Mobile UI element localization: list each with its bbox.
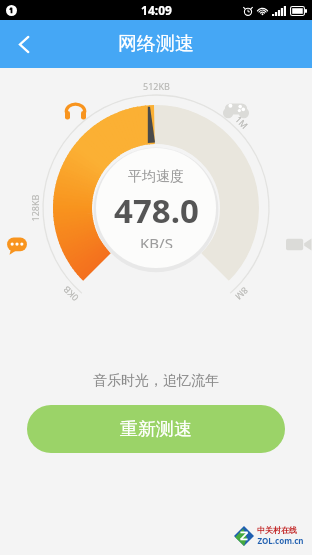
staticText: 1M bbox=[233, 113, 251, 131]
staticText: 0KB bbox=[60, 284, 81, 304]
staticText: ZOL.com.cn bbox=[257, 535, 304, 546]
staticText: 网络测速 bbox=[118, 32, 194, 56]
staticText: 平均速度 bbox=[128, 168, 184, 186]
staticText: 478.0 bbox=[114, 188, 199, 233]
staticText: 512KB bbox=[143, 80, 170, 92]
button[interactable]: Music bbox=[63, 100, 88, 125]
staticText: 128KB bbox=[28, 194, 40, 221]
button[interactable]: Back bbox=[0, 20, 48, 68]
staticText: 14:09 bbox=[141, 2, 172, 18]
staticText: 重新测速 bbox=[120, 418, 192, 441]
staticText: 8M bbox=[233, 285, 251, 303]
button[interactable]: Chat bbox=[6, 234, 28, 256]
staticText: 中关村在线 bbox=[257, 525, 297, 535]
button[interactable]: Video bbox=[286, 236, 312, 253]
button[interactable]: 重新测速 bbox=[27, 405, 285, 453]
button[interactable]: Game bbox=[222, 99, 250, 119]
staticText: 音乐时光，追忆流年 bbox=[93, 372, 219, 390]
staticText: KB/S bbox=[140, 233, 173, 248]
